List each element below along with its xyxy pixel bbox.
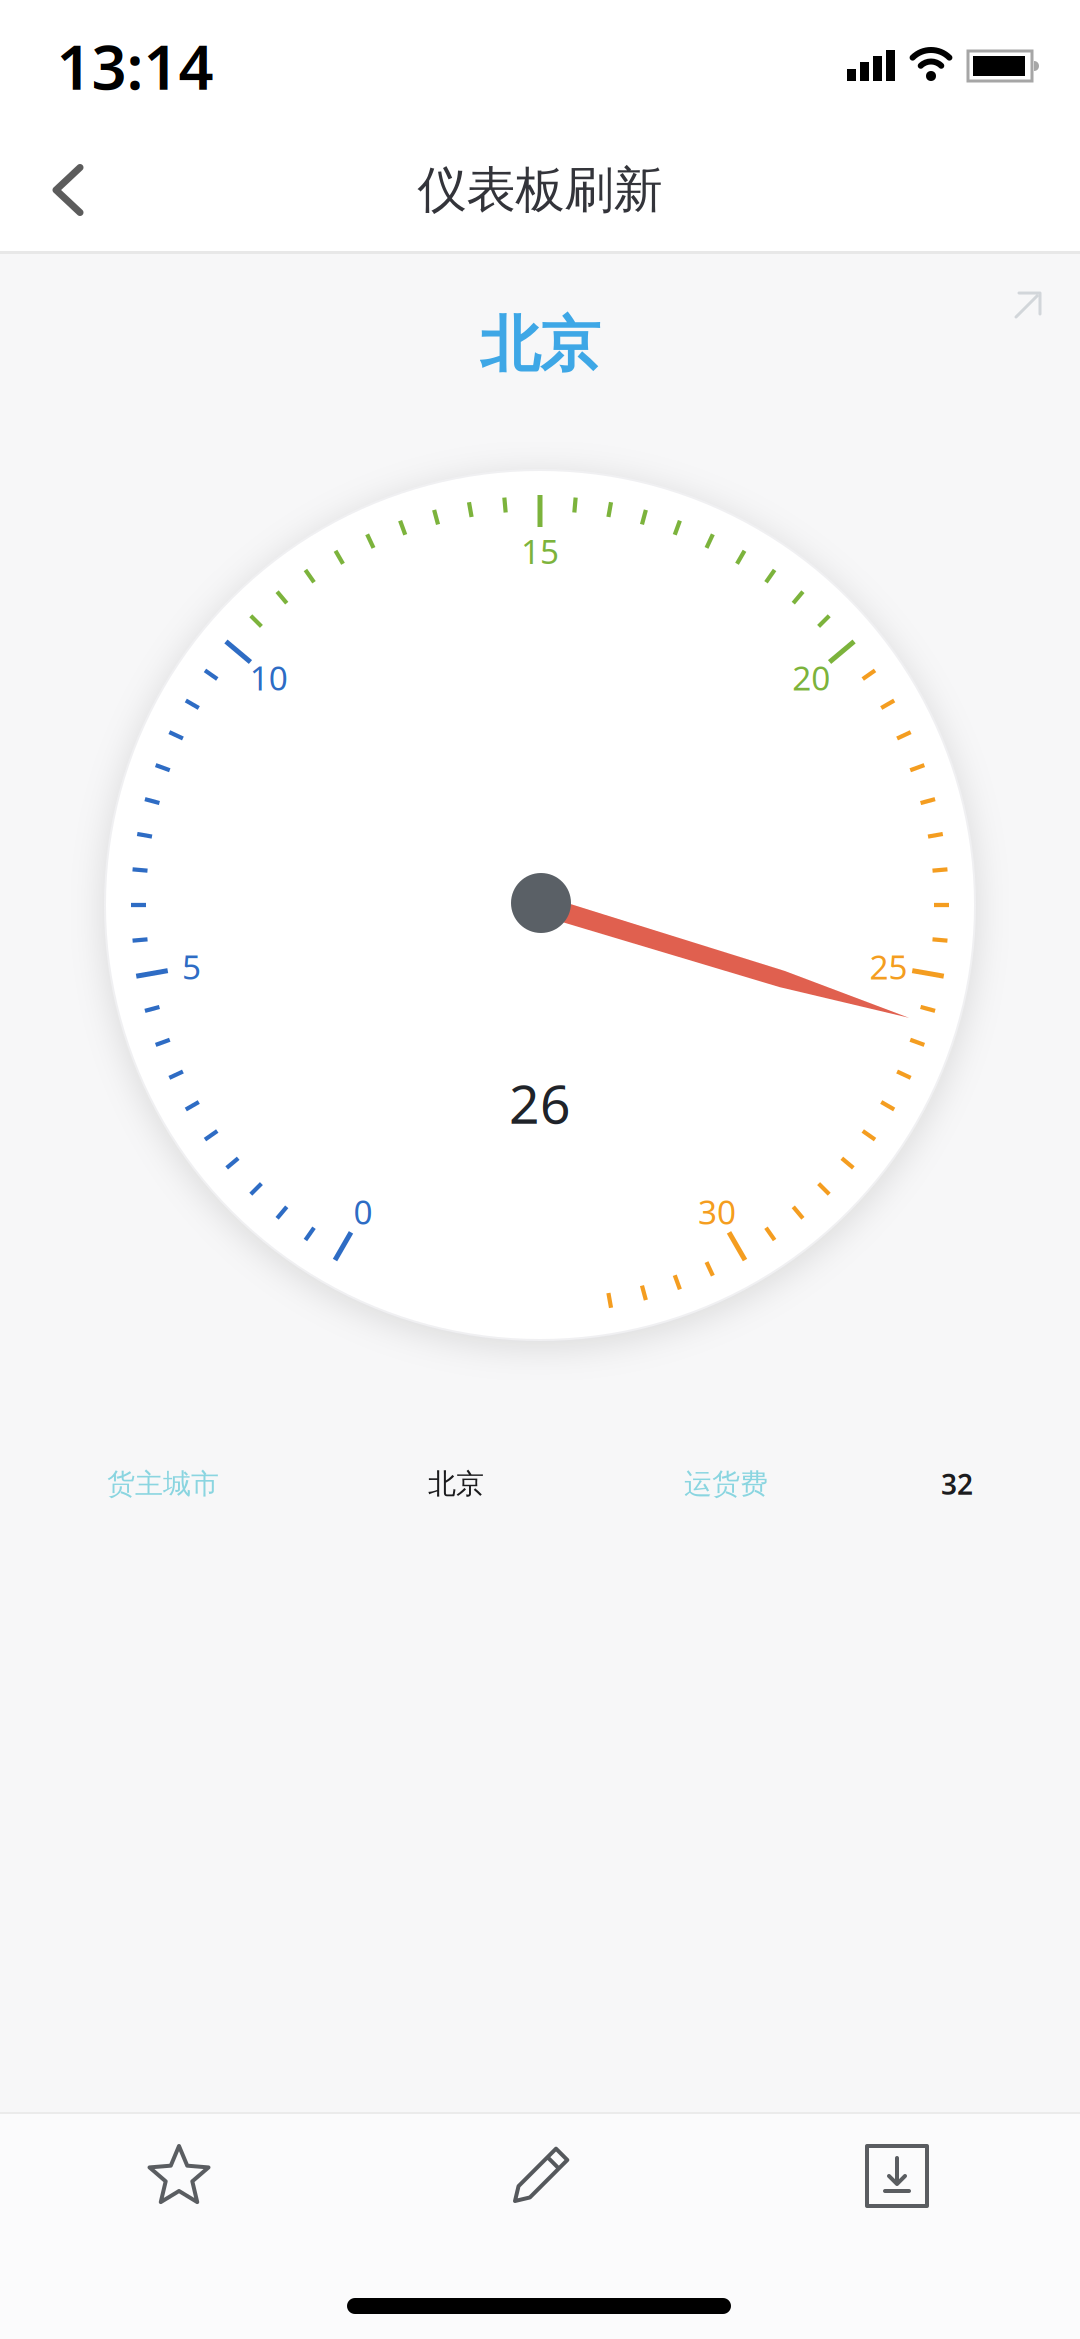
staticText: 北京 [428,1467,484,1501]
staticText: 5 [182,944,201,989]
staticText: 30 [698,1189,736,1234]
staticText: 货主城市 [107,1467,219,1501]
button[interactable]: Download [777,2106,1017,2246]
staticText: 26 [509,1068,571,1138]
staticText: 32 [941,1465,973,1503]
staticText: 25 [870,944,908,989]
staticText: 仪表板刷新 [417,160,662,220]
button[interactable]: Edit [420,2106,660,2246]
button[interactable]: Favorite [59,2106,299,2246]
staticText: 13:14 [56,25,213,107]
button[interactable]: Expand [1010,288,1046,322]
staticText: 20 [792,655,830,700]
button[interactable]: Back [51,163,85,216]
staticText: 0 [353,1189,372,1234]
staticText: 10 [250,655,288,700]
staticText: 15 [521,529,559,573]
staticText: 运货费 [684,1467,768,1501]
staticText: 北京 [480,308,600,382]
